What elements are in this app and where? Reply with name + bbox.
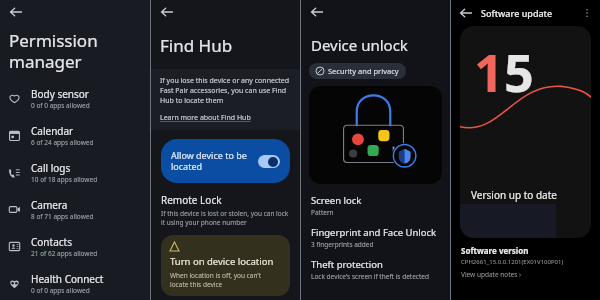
- staticText: Body sensor: [31, 87, 89, 101]
- button[interactable]: Health Connect: [0, 268, 150, 299]
- button[interactable]: Screen lock: [301, 193, 450, 218]
- button[interactable]: Body sensor: [0, 83, 150, 114]
- staticText: Lock device's screen if theft is detecte…: [311, 272, 429, 281]
- staticText: CPH2661_15.0.0.1201(EX01V100P01): [461, 258, 564, 266]
- staticText: 0 of 0 apps allowed: [31, 286, 90, 295]
- staticText: 21 of 62 apps allowed: [31, 249, 98, 258]
- staticText: Calendar: [31, 124, 74, 138]
- other: Back: [457, 4, 475, 22]
- staticText: 10 of 18 apps allowed: [31, 175, 98, 184]
- button[interactable]: Calendar: [0, 120, 150, 151]
- staticText: Fingerprint and Face Unlock: [311, 226, 437, 239]
- staticText: 0 of 0 apps allowed: [31, 101, 90, 110]
- staticText: Call logs: [31, 161, 71, 175]
- button[interactable]: More options: [580, 6, 594, 20]
- staticText: 6 of 24 apps allowed: [31, 138, 94, 147]
- button[interactable]: Turn on device location: [161, 235, 290, 296]
- button[interactable]: Security and privacy: [309, 63, 406, 79]
- staticText: Turn on device location: [170, 255, 274, 268]
- staticText: Screen lock: [311, 194, 362, 207]
- staticText: Version up to date: [471, 188, 557, 202]
- staticText: Software version: [461, 245, 529, 256]
- other: Back: [158, 3, 176, 21]
- button[interactable]: Learn more about Find Hub: [160, 113, 251, 123]
- staticText: Allow device to be located: [171, 149, 258, 173]
- staticText: Software update: [481, 7, 580, 19]
- staticText: If you lose this device or any connected…: [160, 76, 291, 106]
- button[interactable]: Contacts: [0, 231, 150, 262]
- staticText: Device unlock: [311, 35, 408, 55]
- button[interactable]: Theft protection: [301, 257, 450, 282]
- button[interactable]: Call logs: [0, 157, 150, 188]
- button[interactable]: View update notes ›: [461, 270, 522, 279]
- staticText: Pattern: [311, 208, 334, 217]
- staticText: Camera: [31, 198, 68, 212]
- staticText: When location is off, you can't locate t…: [170, 271, 281, 289]
- button[interactable]: Camera: [0, 194, 150, 225]
- staticText: Health Connect: [31, 272, 104, 286]
- staticText: Remote Lock: [161, 193, 222, 207]
- staticText: 1: [474, 36, 504, 107]
- staticText: If this device is lost or stolen, you ca…: [161, 209, 290, 227]
- staticText: 3 fingerprints added: [311, 240, 374, 249]
- staticText: Contacts: [31, 235, 72, 249]
- other: Back: [7, 3, 25, 21]
- staticText: Security and privacy: [328, 66, 399, 76]
- staticText: Permission manager: [9, 29, 98, 73]
- staticText: Theft protection: [311, 258, 383, 271]
- staticText: 8 of 71 apps allowed: [31, 212, 94, 221]
- button[interactable]: Allow device to be located: [161, 139, 290, 183]
- button[interactable]: Fingerprint and Face Unlock: [301, 225, 450, 250]
- staticText: Find Hub: [160, 34, 233, 57]
- other: Back: [308, 3, 326, 21]
- staticText: 5: [504, 36, 534, 107]
